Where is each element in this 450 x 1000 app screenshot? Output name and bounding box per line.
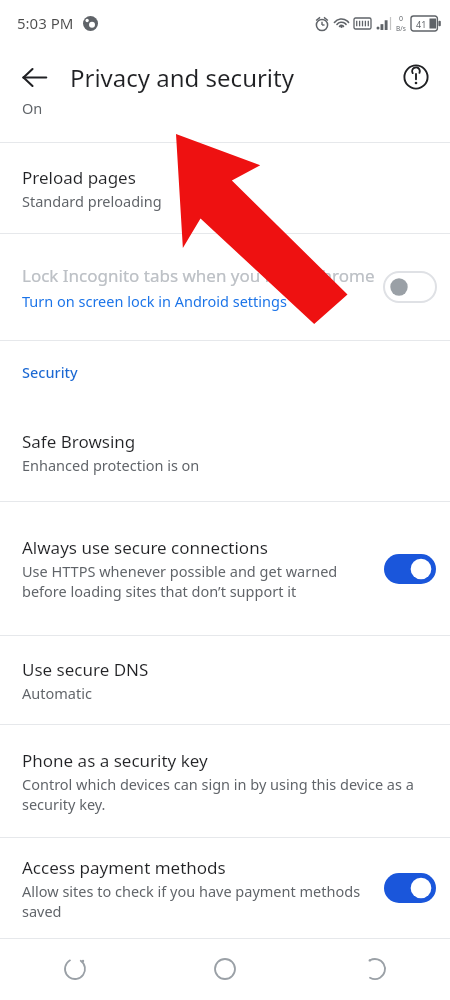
staticText: Enhanced protection is on bbox=[22, 455, 200, 475]
button[interactable]: Home bbox=[150, 938, 300, 1000]
staticText: 5:03 PM bbox=[17, 13, 74, 33]
staticText: 41 bbox=[416, 18, 427, 30]
button[interactable]: Switch on bbox=[382, 868, 438, 908]
staticText: Use HTTPS whenever possible and get warn… bbox=[22, 561, 376, 601]
staticText: Safe Browsing bbox=[22, 430, 136, 453]
staticText: Security bbox=[22, 362, 78, 382]
button[interactable]: Preload pages bbox=[0, 143, 450, 233]
button[interactable]: Lock Incognito tabs when you leave Chrom… bbox=[0, 234, 450, 340]
staticText: Use secure DNS bbox=[22, 658, 149, 681]
staticText: Phone as a security key bbox=[22, 749, 208, 772]
staticText: Allow sites to check if you have payment… bbox=[22, 881, 376, 921]
staticText: Automatic bbox=[22, 683, 92, 703]
button[interactable]: Safe Browsing bbox=[0, 403, 450, 501]
button[interactable]: Recent apps bbox=[0, 938, 150, 1000]
button[interactable]: Switch off bbox=[382, 267, 438, 307]
staticText: On bbox=[22, 98, 43, 118]
staticText: Privacy and security bbox=[70, 61, 394, 94]
button[interactable]: Phone as a security key bbox=[0, 725, 450, 837]
staticText: Preload pages bbox=[22, 166, 136, 189]
button[interactable]: Access payment methods bbox=[0, 838, 450, 938]
button[interactable]: Navigate up bbox=[12, 55, 56, 99]
staticText: Lock Incognito tabs when you leave Chrom… bbox=[22, 264, 375, 287]
staticText: Standard preloading bbox=[22, 191, 162, 211]
button[interactable]: Help and feedback bbox=[394, 55, 438, 99]
button[interactable]: Back bbox=[300, 938, 450, 1000]
button[interactable]: Always use secure connections bbox=[0, 502, 450, 635]
button[interactable]: Use secure DNS bbox=[0, 636, 450, 724]
staticText: Turn on screen lock in Android settings bbox=[22, 291, 287, 311]
staticText: Always use secure connections bbox=[22, 536, 268, 559]
staticText: B/s bbox=[396, 24, 406, 33]
button[interactable]: Switch on bbox=[382, 549, 438, 589]
staticText: Control which devices can sign in by usi… bbox=[22, 774, 438, 814]
button[interactable]: On bbox=[0, 108, 450, 142]
staticText: 0 bbox=[399, 14, 404, 24]
staticText: Access payment methods bbox=[22, 856, 226, 879]
